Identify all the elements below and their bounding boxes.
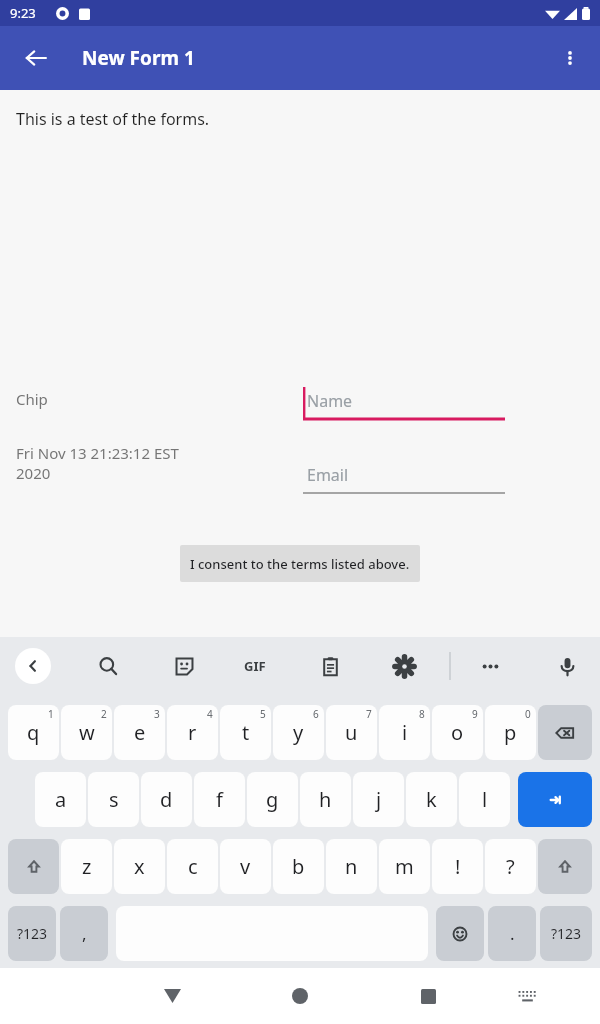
button[interactable]: ? [485,839,536,894]
staticText: t [242,719,250,746]
staticText: Email [307,464,349,486]
staticText: z [82,853,92,880]
staticText: . [510,922,515,945]
button[interactable]: Name [303,384,505,420]
button[interactable]: a [35,772,86,827]
button[interactable]: Stickers [166,648,202,684]
button[interactable]: x [114,839,165,894]
staticText: o [451,719,464,746]
button[interactable]: v [220,839,271,894]
staticText: Fri Nov 13 21:23:12 EST 2020 [16,443,179,483]
button[interactable]: d [141,772,192,827]
staticText: 0 [525,707,531,721]
staticText: s [109,786,119,813]
staticText: d [160,786,173,813]
button[interactable]: Shift [538,839,592,894]
button[interactable]: e [114,705,165,760]
button[interactable]: I consent to the terms listed above. [180,545,420,582]
button[interactable]: . [488,906,536,961]
staticText: ?123 [551,924,582,943]
button[interactable]: Clipboard [312,648,348,684]
staticText: 5 [260,707,266,721]
button[interactable]: Back [148,968,196,1024]
staticText: k [426,786,437,813]
button[interactable]: l [459,772,510,827]
staticText: , [82,922,87,945]
button[interactable]: Voice input [549,648,585,684]
staticText: I consent to the terms listed above. [190,555,410,573]
staticText: g [266,786,279,813]
button[interactable]: Recents [404,968,452,1024]
button[interactable]: ?123 [8,906,56,961]
button[interactable]: ?123 [540,906,592,961]
staticText: GIF [244,657,266,675]
button[interactable]: Email [303,458,505,494]
staticText: x [134,853,145,880]
button[interactable]: GIF [232,648,278,684]
button[interactable]: Settings [386,648,422,684]
button[interactable]: y [273,705,324,760]
button[interactable]: Back [12,34,60,82]
button[interactable]: o [432,705,483,760]
staticText: This is a test of the forms. [16,108,210,130]
staticText: f [216,786,223,813]
staticText: ! [455,853,461,880]
button[interactable]: More [472,648,508,684]
staticText: 4 [207,707,213,721]
button[interactable]: f [194,772,245,827]
staticText: u [345,719,358,746]
staticText: ?123 [17,924,48,943]
button[interactable]: , [60,906,108,961]
button[interactable]: Shift [8,839,59,894]
button[interactable]: g [247,772,298,827]
button[interactable]: r [167,705,218,760]
button[interactable]: Search [90,648,126,684]
button[interactable]: Backspace [538,705,592,760]
button[interactable]: c [167,839,218,894]
staticText: i [402,719,408,746]
staticText: n [345,853,358,880]
staticText: v [240,853,251,880]
staticText: a [55,786,67,813]
button[interactable]: Emoji [436,906,484,961]
button[interactable]: p [485,705,536,760]
button[interactable]: i [379,705,430,760]
staticText: Name [307,390,353,412]
button[interactable]: j [353,772,404,827]
button[interactable]: n [326,839,377,894]
button[interactable]: Close toolbar [15,648,51,684]
button[interactable]: u [326,705,377,760]
staticText: j [376,786,382,813]
staticText: q [27,719,40,746]
staticText: 9 [472,707,478,721]
staticText: m [395,853,414,880]
button[interactable]: Hide keyboard [505,968,549,1024]
staticText: h [319,786,332,813]
button[interactable]: w [61,705,112,760]
staticText: w [79,719,95,746]
staticText: New Form 1 [82,45,195,71]
button[interactable]: q [8,705,59,760]
staticText: y [293,719,304,746]
button[interactable]: ! [432,839,483,894]
staticText: 8 [419,707,425,721]
button[interactable]: z [61,839,112,894]
button[interactable]: t [220,705,271,760]
staticText: r [188,719,197,746]
button[interactable]: b [273,839,324,894]
staticText: 6 [313,707,319,721]
staticText: p [504,719,517,746]
staticText: 9:23 [10,4,36,22]
staticText: c [188,853,198,880]
button[interactable]: More options [546,34,594,82]
button[interactable]: k [406,772,457,827]
button[interactable]: Next field [518,772,592,827]
button[interactable]: h [300,772,351,827]
button[interactable]: s [88,772,139,827]
button[interactable]: m [379,839,430,894]
staticText: 3 [154,707,160,721]
button[interactable]: Home [276,968,324,1024]
staticText: 7 [366,707,372,721]
staticText: 2 [101,707,107,721]
